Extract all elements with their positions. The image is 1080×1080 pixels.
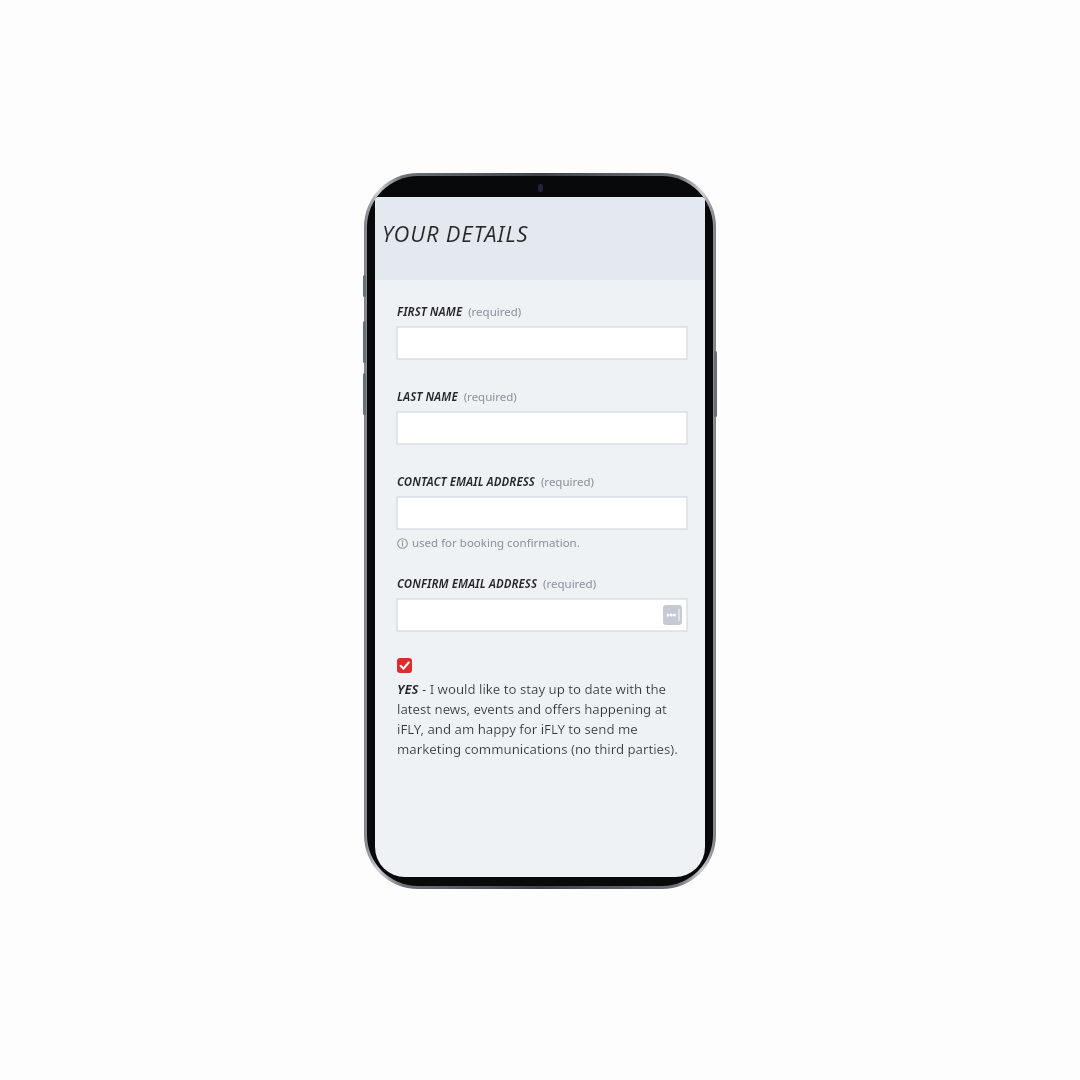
- button[interactable]: Marketing opt-in, checked: [397, 658, 412, 673]
- staticText: CONTACT EMAIL ADDRESS (required): [397, 474, 595, 490]
- staticText: YOUR DETAILS: [382, 218, 529, 248]
- button[interactable]: Autofill suggestions: [663, 605, 682, 625]
- staticText: LAST NAME (required): [397, 389, 517, 405]
- staticText: used for booking confirmation.: [412, 535, 580, 551]
- button[interactable]: [397, 497, 687, 529]
- button[interactable]: [397, 412, 687, 444]
- staticText: FIRST NAME (required): [397, 304, 522, 320]
- staticText: CONFIRM EMAIL ADDRESS (required): [397, 576, 597, 592]
- button[interactable]: Autofill suggestions: [397, 599, 687, 631]
- button[interactable]: [397, 327, 687, 359]
- staticText: YES - I would like to stay up to date wi…: [397, 680, 687, 758]
